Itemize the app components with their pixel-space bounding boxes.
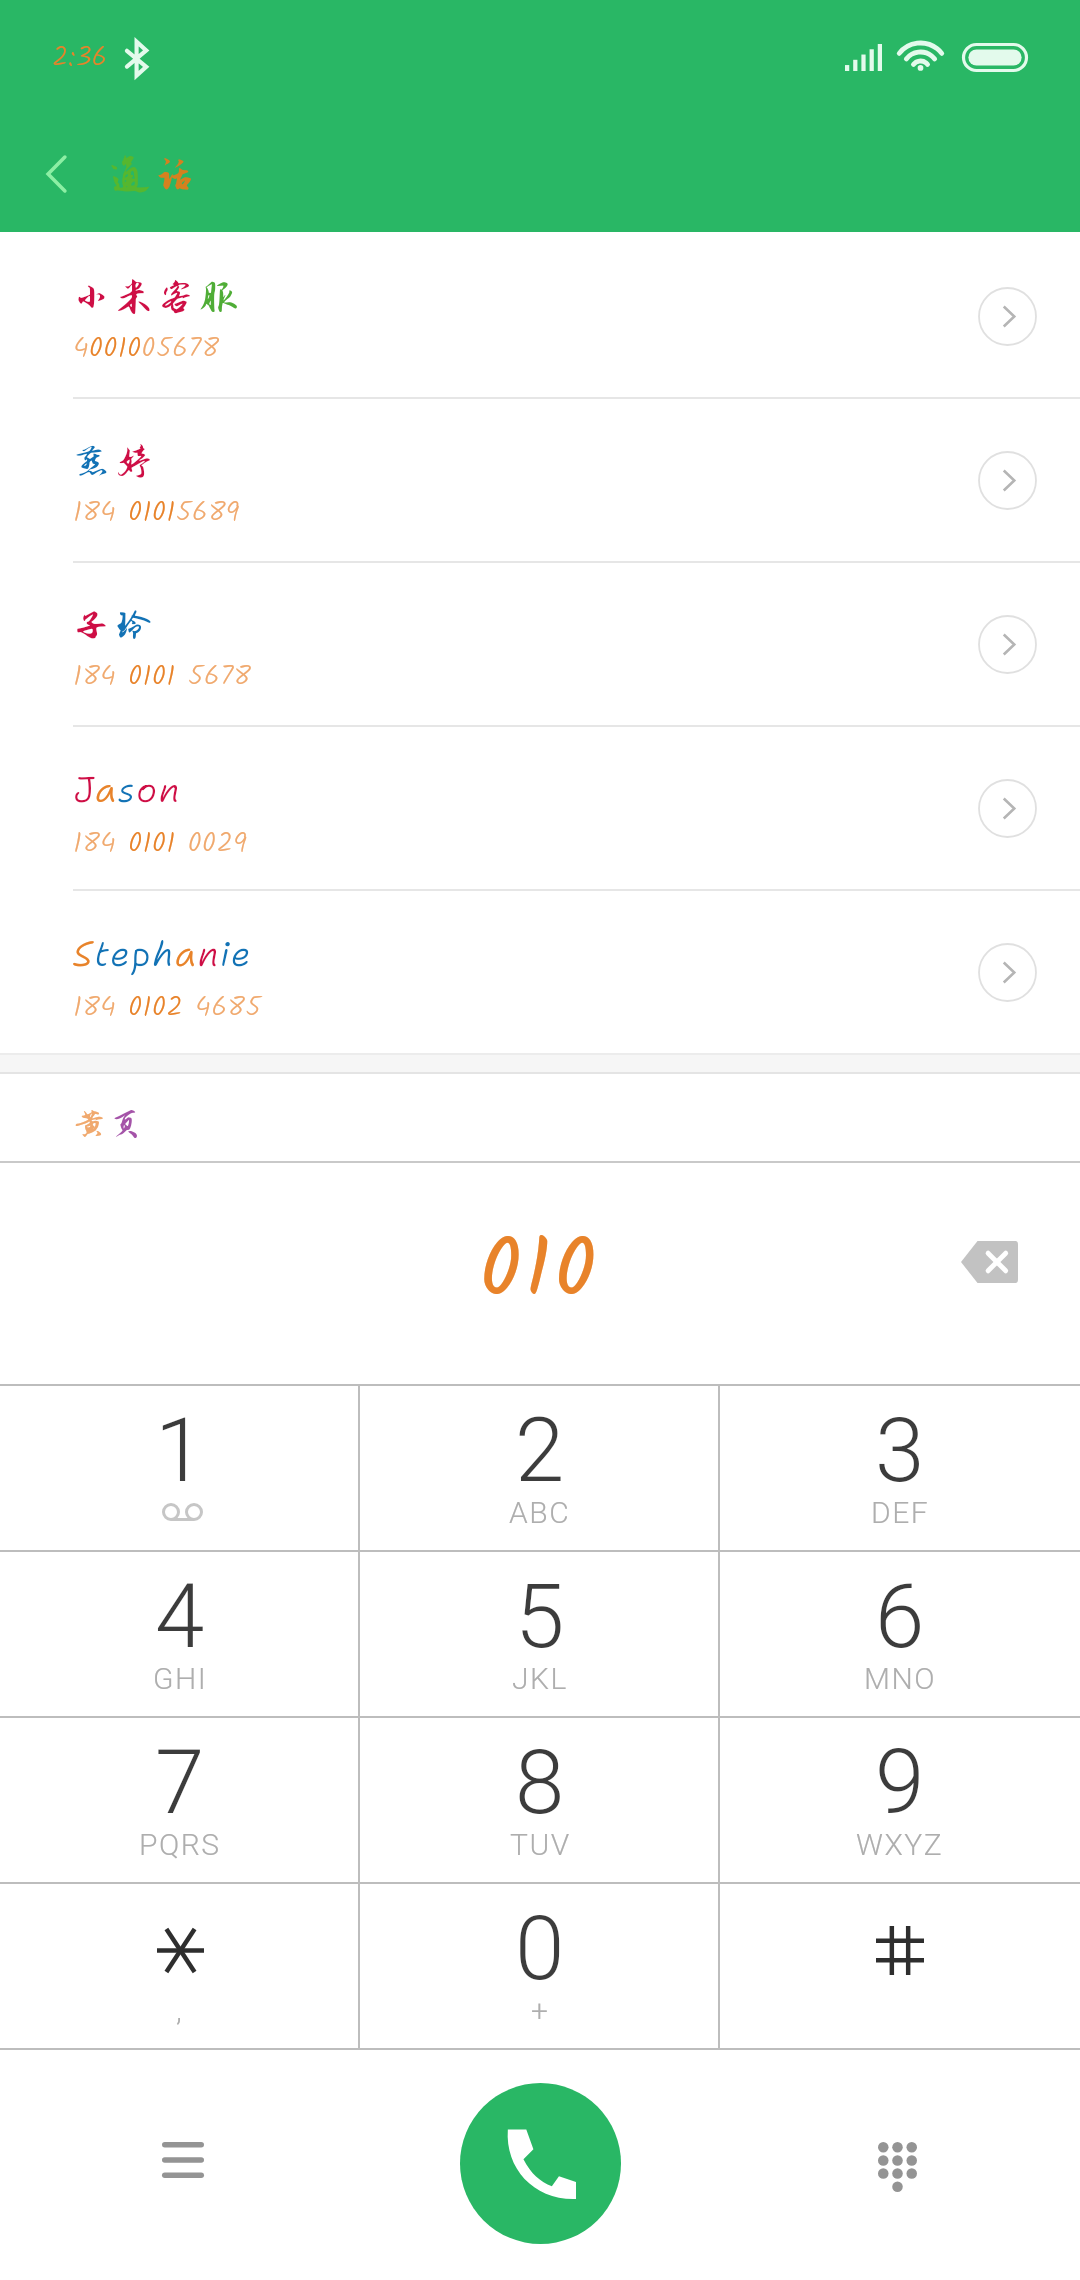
staticText: Jason: [73, 766, 182, 813]
staticText: 燕婷: [73, 441, 158, 482]
button[interactable]: Delete: [939, 1222, 1039, 1302]
button[interactable]: 9: [720, 1718, 1080, 1882]
staticText: DEF: [871, 1495, 930, 1530]
staticText: 0: [515, 1896, 565, 2000]
staticText: 通话: [110, 152, 200, 197]
staticText: 4: [155, 1564, 205, 1668]
button[interactable]: 0: [360, 1884, 720, 2048]
staticText: TUV: [510, 1827, 571, 1862]
staticText: 小米客服: [73, 277, 243, 318]
staticText: 184 0102 4685: [73, 986, 262, 1031]
button[interactable]: 8: [360, 1718, 720, 1882]
staticText: 5: [515, 1564, 565, 1668]
staticText: 9: [875, 1730, 925, 1834]
staticText: 2: [515, 1398, 565, 1502]
staticText: 184 0101 5678: [73, 655, 252, 700]
staticText: 8: [515, 1730, 565, 1834]
button[interactable]: 燕婷: [0, 399, 1080, 561]
staticText: MNO: [864, 1661, 937, 1696]
button[interactable]: Contact details: [967, 768, 1047, 848]
staticText: 184 0101 0029: [73, 822, 248, 867]
staticText: 子玲: [73, 605, 158, 646]
staticText: WXYZ: [856, 1827, 944, 1862]
button[interactable]: 1: [0, 1386, 360, 1550]
button[interactable]: Contact details: [967, 276, 1047, 356]
button[interactable]: 小米客服: [0, 235, 1080, 397]
button[interactable]: 子玲: [0, 563, 1080, 725]
button[interactable]: 黄页: [0, 1074, 1080, 1161]
staticText: ABC: [509, 1495, 571, 1530]
button[interactable]: 5: [360, 1552, 720, 1716]
staticText: PQRS: [139, 1827, 221, 1862]
staticText: +: [531, 1993, 550, 2028]
button[interactable]: 2: [360, 1386, 720, 1550]
staticText: JKL: [512, 1661, 568, 1696]
button[interactable]: Contact details: [967, 932, 1047, 1012]
staticText: 3: [875, 1398, 925, 1502]
staticText: 6: [875, 1564, 925, 1668]
button[interactable]: Stephanie: [0, 891, 1080, 1053]
button[interactable]: Jason: [0, 727, 1080, 889]
button[interactable]: 3: [720, 1386, 1080, 1550]
button[interactable]: Contact details: [967, 440, 1047, 520]
button[interactable]: Contact details: [967, 604, 1047, 684]
staticText: 4001005678: [73, 327, 220, 372]
staticText: ,: [176, 1993, 184, 2028]
button[interactable]: 7: [0, 1718, 360, 1882]
button[interactable]: ,: [0, 1884, 360, 2048]
button[interactable]: 6: [720, 1552, 1080, 1716]
staticText: Stephanie: [73, 930, 253, 977]
button[interactable]: Back: [1, 116, 111, 232]
staticText: 1: [155, 1398, 205, 1502]
staticText: 184 01015689: [73, 491, 240, 536]
button[interactable]: 4: [0, 1552, 360, 1716]
staticText: GHI: [153, 1661, 208, 1696]
staticText: 010: [480, 1208, 600, 1339]
button[interactable]: Call: [460, 2083, 621, 2244]
button[interactable]: [720, 1884, 1080, 2048]
button[interactable]: Dialpad: [842, 2110, 952, 2220]
button[interactable]: Call log: [128, 2110, 238, 2220]
staticText: 2:36: [52, 36, 108, 81]
staticText: 黄页: [73, 1106, 146, 1142]
staticText: 7: [155, 1730, 205, 1834]
